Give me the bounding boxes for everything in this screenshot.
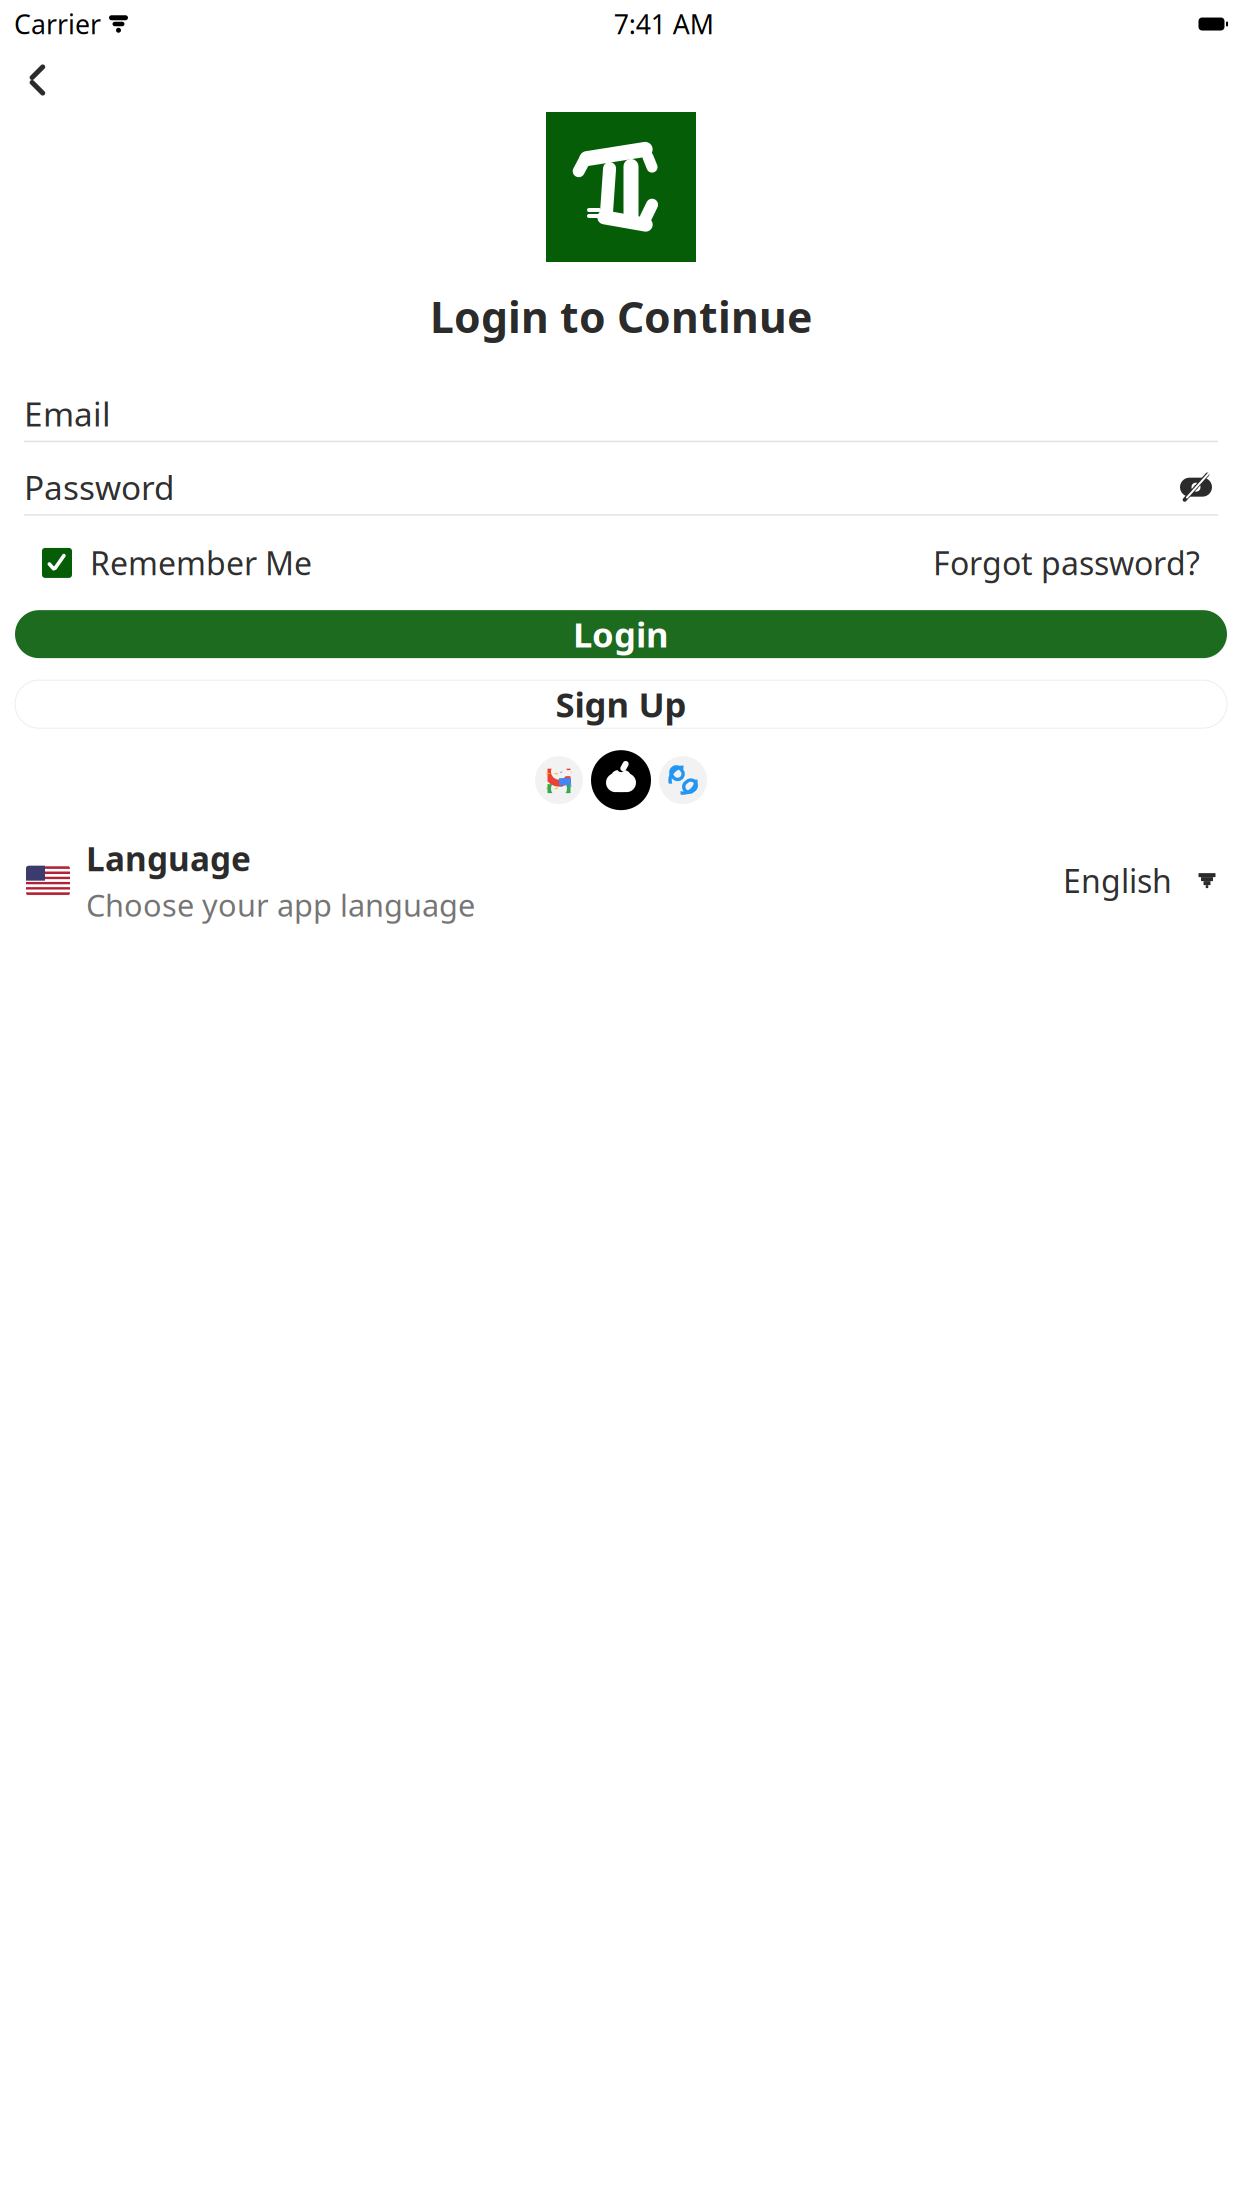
button[interactable]: Language — [0, 836, 1242, 925]
staticText: Choose your app language — [86, 884, 475, 925]
button[interactable]: Forgot password? — [933, 542, 1200, 584]
button[interactable]: Sign in with Apple — [591, 750, 651, 810]
button[interactable]: Sign Up — [15, 680, 1227, 728]
staticText: Remember Me — [90, 542, 312, 584]
button[interactable]: Sign in with Google — [535, 756, 583, 804]
button[interactable]: Sign in with phone number — [659, 756, 707, 804]
staticText: Sign Up — [555, 681, 686, 727]
button[interactable]: Back — [14, 58, 58, 102]
staticText: English — [1063, 859, 1172, 902]
staticText: Login to Continue — [430, 288, 812, 345]
staticText: Password — [24, 465, 175, 509]
staticText: Language — [86, 836, 251, 880]
staticText: Carrier — [14, 6, 101, 42]
staticText: Login — [573, 611, 669, 657]
button[interactable]: Remember Me — [42, 542, 312, 584]
staticText: Email — [24, 391, 111, 436]
staticText: Forgot password? — [933, 542, 1200, 584]
button[interactable]: Login — [15, 610, 1227, 658]
button[interactable]: Show password — [1174, 467, 1218, 507]
staticText: 7:41 AM — [614, 6, 714, 42]
